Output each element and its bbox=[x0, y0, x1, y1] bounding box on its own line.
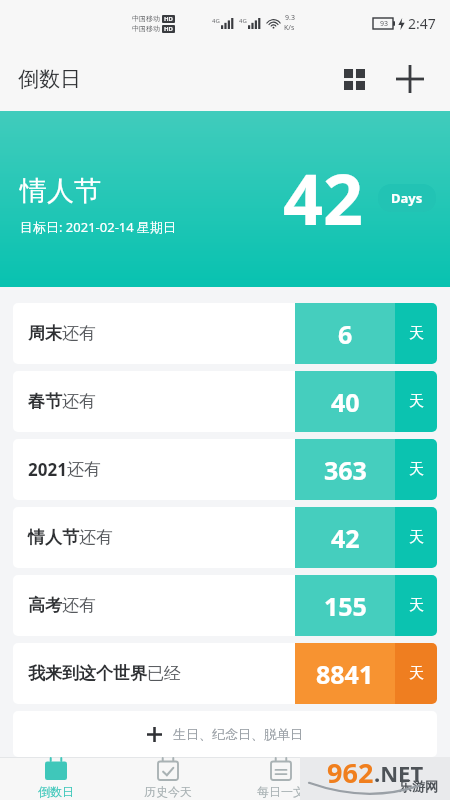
staticText: 8841 bbox=[316, 657, 374, 691]
staticText: 2021 bbox=[28, 458, 67, 481]
staticText: 每日一文 bbox=[257, 784, 305, 799]
staticText: 363 bbox=[324, 453, 367, 487]
staticText: 目标日: 2021-02-14 星期日 bbox=[20, 218, 177, 236]
staticText: 高考 bbox=[28, 595, 62, 616]
staticText: 倒数日 bbox=[38, 784, 74, 799]
button[interactable]: 历史今天 bbox=[112, 757, 224, 800]
staticText: 天 bbox=[409, 392, 424, 411]
button[interactable]: Add countdown bbox=[388, 57, 432, 101]
staticText: 历史今天 bbox=[144, 784, 192, 799]
staticText: 42 bbox=[283, 150, 364, 245]
staticText: 我的 bbox=[382, 784, 406, 799]
staticText: 春节 bbox=[28, 391, 62, 412]
staticText: 还有 bbox=[67, 459, 101, 480]
staticText: 已经 bbox=[147, 663, 181, 684]
staticText: 155 bbox=[324, 589, 367, 623]
staticText: 4G bbox=[239, 17, 247, 25]
staticText: 天 bbox=[409, 664, 424, 683]
button[interactable]: 倒数日 bbox=[0, 757, 112, 800]
button[interactable]: 每日一文 bbox=[224, 757, 337, 800]
staticText: 中国移动 bbox=[132, 14, 160, 23]
staticText: 42 bbox=[331, 521, 360, 555]
staticText: 周末 bbox=[28, 323, 62, 344]
staticText: 天 bbox=[409, 460, 424, 479]
button[interactable]: Grid view bbox=[332, 57, 376, 101]
staticText: 2:47 bbox=[408, 14, 436, 33]
staticText: 天 bbox=[409, 324, 424, 343]
staticText: 93 bbox=[380, 19, 389, 29]
button[interactable]: 生日、纪念日、脱单日 bbox=[13, 711, 437, 757]
staticText: 还有 bbox=[62, 595, 96, 616]
staticText: HD bbox=[164, 25, 173, 33]
button[interactable]: 周末 bbox=[13, 303, 437, 364]
button[interactable]: 2021 bbox=[13, 439, 437, 500]
staticText: 天 bbox=[409, 528, 424, 547]
staticText: 我来到这个世界 bbox=[28, 663, 147, 684]
staticText: Days bbox=[391, 189, 423, 207]
staticText: 9.3 bbox=[285, 13, 295, 23]
staticText: K/s bbox=[284, 23, 295, 33]
button[interactable]: 情人节 bbox=[13, 507, 437, 568]
staticText: 生日、纪念日、脱单日 bbox=[173, 726, 303, 742]
staticText: 还有 bbox=[79, 527, 113, 548]
button[interactable]: 情人节 bbox=[0, 111, 450, 287]
staticText: 天 bbox=[409, 596, 424, 615]
button[interactable]: 我的 bbox=[337, 757, 450, 800]
staticText: 962 bbox=[327, 754, 374, 791]
staticText: .NET bbox=[374, 758, 424, 788]
button[interactable]: 高考 bbox=[13, 575, 437, 636]
staticText: 4G bbox=[212, 17, 220, 25]
button[interactable]: 春节 bbox=[13, 371, 437, 432]
staticText: 还有 bbox=[62, 391, 96, 412]
staticText: 乐游网 bbox=[399, 778, 438, 794]
staticText: 40 bbox=[331, 385, 360, 419]
staticText: 倒数日 bbox=[18, 66, 81, 92]
button[interactable]: 我来到这个世界 bbox=[13, 643, 437, 704]
staticText: 还有 bbox=[62, 323, 96, 344]
staticText: 中国移动 bbox=[132, 24, 160, 33]
staticText: 情人节 bbox=[28, 527, 79, 548]
staticText: 情人节 bbox=[20, 174, 101, 208]
staticText: 6 bbox=[338, 317, 353, 351]
staticText: HD bbox=[164, 15, 173, 23]
